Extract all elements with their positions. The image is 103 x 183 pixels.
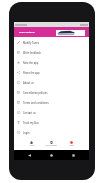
button[interactable]: About us [14, 77, 89, 87]
other: Home [50, 154, 53, 157]
staticText: Track my Bus [23, 121, 39, 124]
button[interactable]: Terms and conditions [14, 97, 89, 107]
staticText: Cancellation policies [23, 91, 48, 94]
other: Recents [72, 154, 75, 157]
button[interactable]: Modify Tunes [14, 37, 89, 47]
button[interactable]: Write feedback [14, 47, 89, 57]
staticText: Modify Tunes [23, 41, 39, 44]
staticText: About us [23, 81, 34, 84]
staticText: More [69, 144, 74, 147]
staticText: Home [29, 144, 35, 147]
staticText: Terms and conditions [23, 101, 49, 104]
staticText: Login [23, 131, 30, 134]
staticText: Rate the app [23, 61, 39, 64]
staticText: Write feedback [23, 51, 42, 54]
button[interactable]: Login [14, 127, 89, 137]
button[interactable]: Track my Bus [14, 117, 89, 127]
button[interactable]: More [61, 137, 81, 147]
staticText: More Options [19, 31, 35, 34]
staticText: Contact us [23, 111, 36, 114]
button[interactable]: My Bookings [41, 137, 61, 147]
button[interactable]: Contact us [14, 107, 89, 117]
button[interactable]: Share the app [14, 67, 89, 77]
staticText: My Bookings [45, 144, 57, 147]
button[interactable]: Cancellation policies [14, 87, 89, 97]
button[interactable]: Promo banner [56, 30, 85, 36]
other: Back [28, 154, 31, 157]
staticText: Share the app [23, 71, 40, 74]
button[interactable]: Home [22, 137, 41, 147]
button[interactable]: Rate the app [14, 57, 89, 67]
